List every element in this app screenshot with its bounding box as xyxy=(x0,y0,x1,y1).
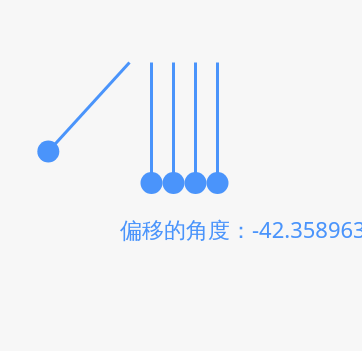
button[interactable]: Newton's cradle, drag a ball to swing it xyxy=(0,0,362,351)
staticText: 偏移的角度：-42.3589635 xyxy=(120,214,362,244)
